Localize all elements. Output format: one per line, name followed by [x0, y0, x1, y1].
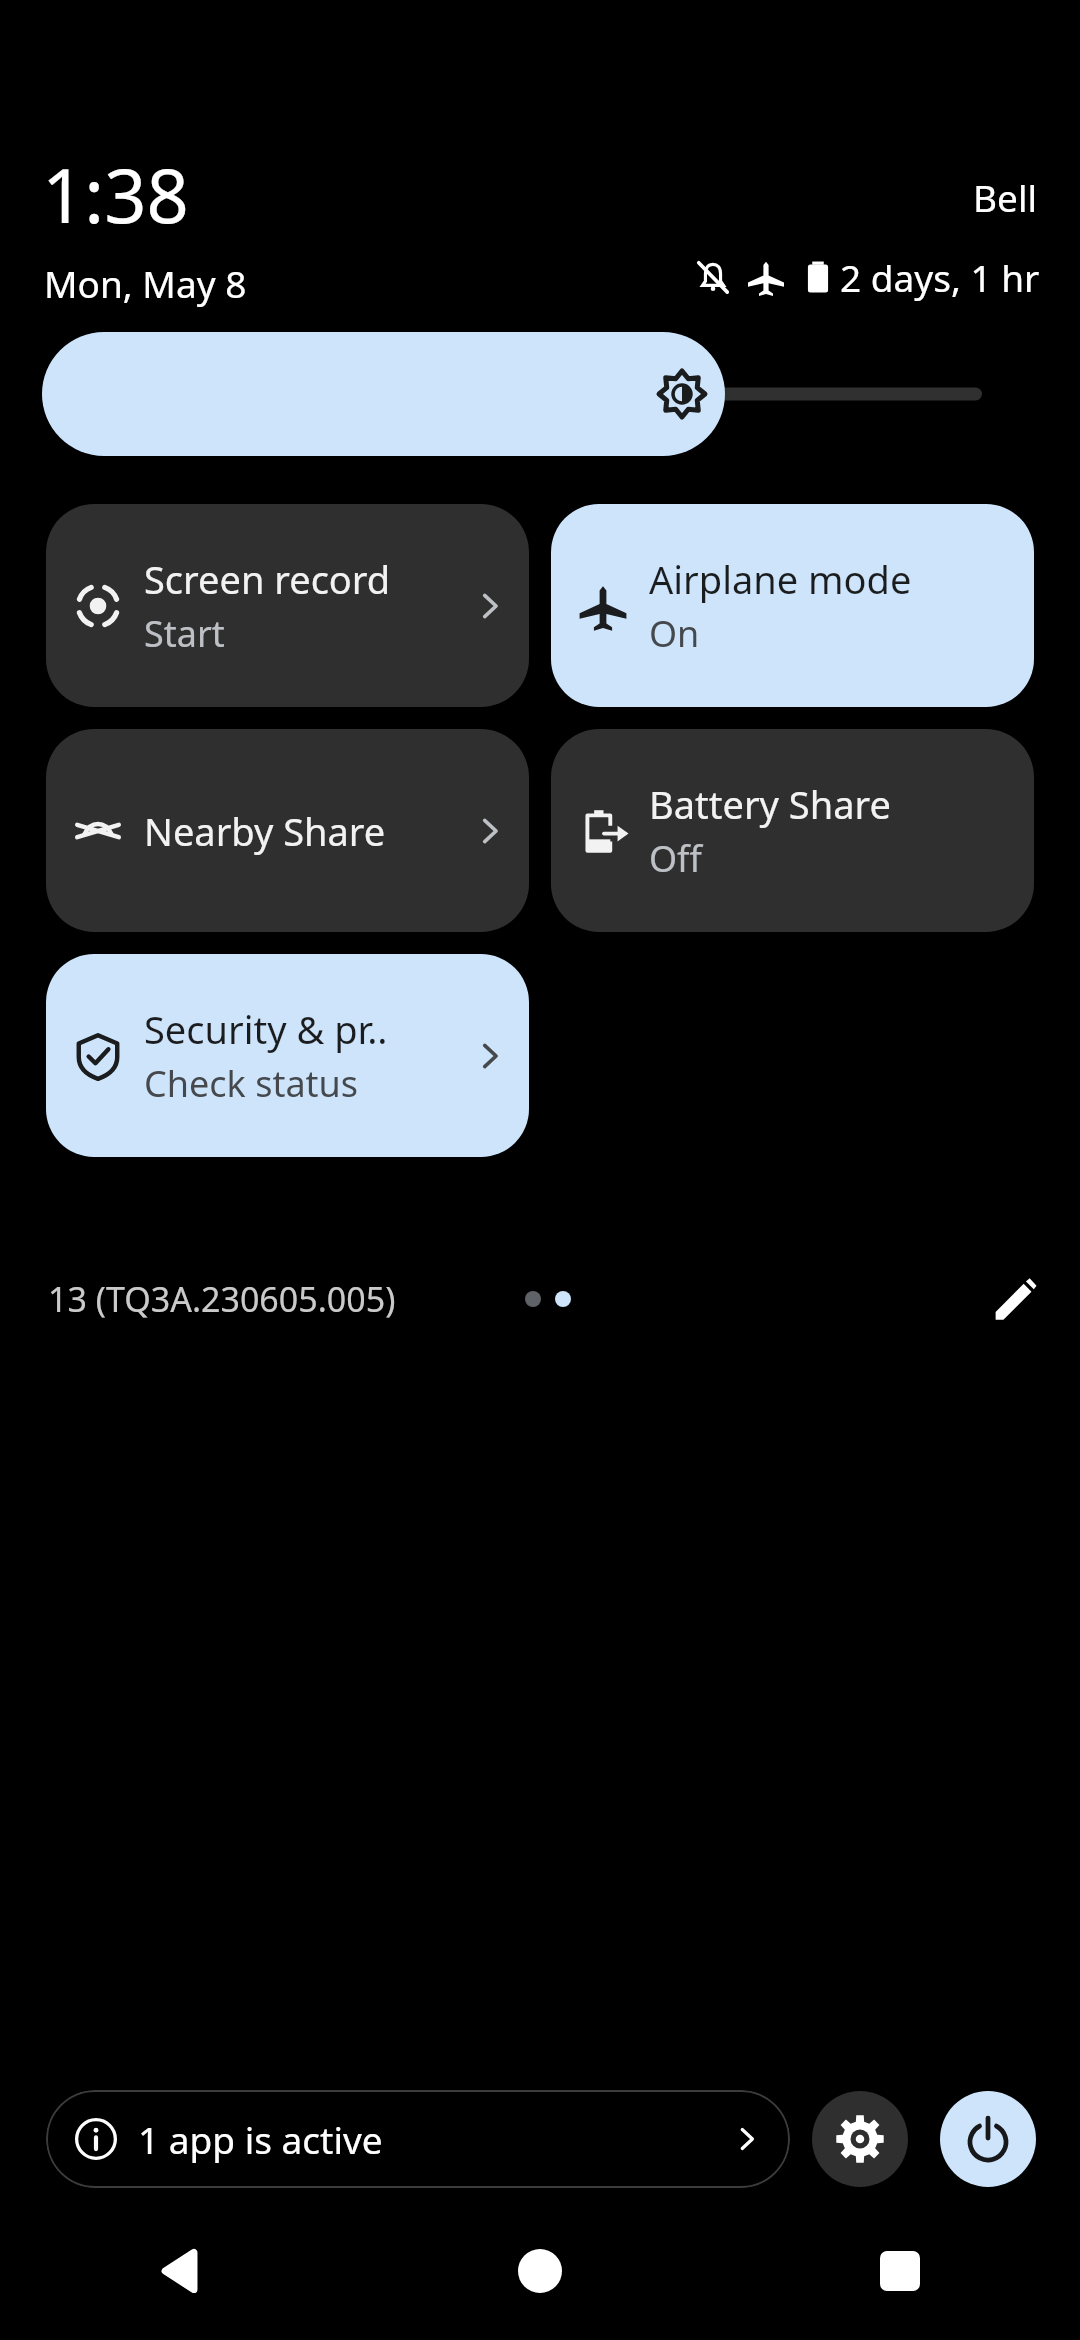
staticText: Off: [649, 834, 702, 883]
staticText: On: [649, 609, 700, 658]
staticText: Bell: [973, 172, 1038, 222]
staticText: Mon, May 8: [44, 258, 247, 308]
staticText: Battery Share: [649, 778, 891, 830]
staticText: Airplane mode: [649, 553, 912, 605]
staticText: 1 app is active: [138, 2114, 730, 2164]
button[interactable]: Settings: [812, 2091, 908, 2187]
staticText: Check status: [144, 1059, 359, 1108]
button[interactable]: Screen record: [46, 504, 529, 707]
staticText: Nearby Share: [144, 805, 386, 857]
button[interactable]: 1 app is active: [46, 2090, 790, 2188]
button[interactable]: Battery Share: [551, 729, 1034, 932]
button[interactable]: Airplane mode: [551, 504, 1034, 707]
staticText: 1:38: [42, 144, 189, 245]
staticText: Screen record: [144, 553, 391, 605]
button[interactable]: Security & pr..: [46, 954, 529, 1157]
button[interactable]: Home: [360, 2228, 720, 2314]
staticText: 13 (TQ3A.230605.005): [48, 1276, 396, 1322]
button[interactable]: Back: [0, 2228, 360, 2314]
button[interactable]: Edit tiles: [982, 1269, 1046, 1329]
button[interactable]: Nearby Share: [46, 729, 529, 932]
staticText: 2 days, 1 hr: [840, 252, 1040, 302]
staticText: Security & pr..: [144, 1003, 388, 1055]
staticText: Start: [144, 609, 225, 658]
button[interactable]: Power: [940, 2091, 1036, 2187]
button[interactable]: Recents: [720, 2228, 1080, 2314]
button[interactable]: Brightness: [42, 332, 982, 456]
